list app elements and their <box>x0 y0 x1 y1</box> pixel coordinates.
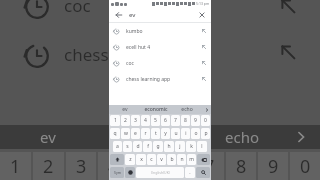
button[interactable]: 6 <box>161 115 170 126</box>
staticText: echo <box>225 127 260 147</box>
button[interactable]: Shift <box>110 154 124 165</box>
staticText: h <box>167 143 171 150</box>
staticText: b <box>170 156 174 163</box>
button[interactable]: d <box>133 141 142 152</box>
staticText: chess le <box>64 43 127 66</box>
button[interactable]: o <box>191 128 200 139</box>
button[interactable]: t <box>151 128 160 139</box>
button[interactable]: r <box>141 128 150 139</box>
staticText: ev <box>40 127 56 147</box>
button[interactable]: l <box>197 141 207 152</box>
staticText: economic <box>144 106 168 113</box>
button[interactable]: 1 <box>110 115 120 126</box>
staticText: 3 <box>76 154 87 179</box>
staticText: 1 <box>114 117 117 124</box>
staticText: f <box>147 143 149 150</box>
button[interactable]: 7 <box>171 115 180 126</box>
button[interactable]: 5 <box>151 115 160 126</box>
staticText: q <box>113 130 117 137</box>
button[interactable]: j <box>175 141 185 152</box>
button[interactable]: Sym <box>110 167 124 178</box>
staticText: e <box>134 130 137 137</box>
other: Insert kumbo <box>201 28 207 34</box>
staticText: 5 <box>140 154 151 179</box>
staticText: 4 <box>144 117 147 124</box>
button[interactable]: h <box>164 141 174 152</box>
staticText: ecell hut 4 <box>126 44 201 51</box>
staticText: echo <box>181 106 193 113</box>
button[interactable]: k <box>186 141 196 152</box>
staticText: g <box>156 143 160 150</box>
staticText: 1 <box>10 154 21 179</box>
staticText: 3 <box>134 117 137 124</box>
button[interactable]: 0 <box>201 115 210 126</box>
button[interactable]: Back <box>113 9 124 20</box>
button[interactable]: Space <box>136 167 184 178</box>
button[interactable]: m <box>187 154 196 165</box>
staticText: English(UK) <box>151 170 170 175</box>
button[interactable]: chess learning app <box>109 71 211 87</box>
button[interactable]: g <box>153 141 163 152</box>
staticText: j <box>179 143 181 150</box>
staticText: 4 <box>108 154 119 179</box>
button[interactable]: u <box>171 128 180 139</box>
button[interactable]: . <box>185 167 195 178</box>
button[interactable]: 8 <box>181 115 190 126</box>
staticText: coc <box>126 60 201 67</box>
staticText: m <box>189 156 194 163</box>
staticText: 5:13 pm <box>196 1 210 6</box>
staticText: 5 <box>154 117 157 124</box>
button[interactable]: w <box>121 128 130 139</box>
button[interactable]: ecell hut 4 <box>109 39 211 55</box>
staticText: 7 <box>204 154 215 179</box>
button[interactable]: a <box>113 141 122 152</box>
button[interactable]: s <box>123 141 132 152</box>
button[interactable]: More suggestions <box>202 105 211 114</box>
staticText: p <box>204 130 208 137</box>
staticText: d <box>136 143 140 150</box>
button[interactable]: b <box>167 154 176 165</box>
staticText: chess learning app <box>126 76 201 83</box>
button[interactable]: n <box>177 154 186 165</box>
button[interactable]: Change language <box>125 167 135 178</box>
staticText: v <box>160 156 163 163</box>
button[interactable]: 2 <box>121 115 130 126</box>
staticText: i <box>185 130 187 137</box>
staticText: 2 <box>124 117 127 124</box>
button[interactable]: economic <box>140 105 171 114</box>
staticText: x <box>140 156 143 163</box>
button[interactable]: 3 <box>131 115 140 126</box>
button[interactable]: coc <box>109 55 211 71</box>
button[interactable]: ev <box>129 7 196 22</box>
button[interactable]: f <box>143 141 152 152</box>
staticText: c <box>150 156 153 163</box>
button[interactable]: 9 <box>191 115 200 126</box>
other: Insert chess learning app <box>201 76 207 82</box>
staticText: 9 <box>268 154 279 179</box>
button[interactable]: Backspace <box>197 154 210 165</box>
staticText: z <box>129 156 132 163</box>
button[interactable]: x <box>136 154 146 165</box>
staticText: 6 <box>172 154 183 179</box>
button[interactable]: echo <box>171 105 202 114</box>
button[interactable]: Search <box>196 167 210 178</box>
button[interactable]: z <box>125 154 135 165</box>
button[interactable]: q <box>110 128 120 139</box>
staticText: k <box>190 143 193 150</box>
staticText: 9 <box>194 117 197 124</box>
button[interactable]: e <box>131 128 140 139</box>
staticText: t <box>155 130 157 137</box>
staticText: s <box>126 143 129 150</box>
staticText: r <box>144 130 147 137</box>
button[interactable]: v <box>157 154 166 165</box>
button[interactable]: p <box>201 128 210 139</box>
button[interactable]: 4 <box>141 115 150 126</box>
button[interactable]: ev <box>109 105 140 114</box>
button[interactable]: Clear <box>196 9 207 20</box>
button[interactable]: y <box>161 128 170 139</box>
staticText: u <box>174 130 178 137</box>
button[interactable]: c <box>147 154 156 165</box>
button[interactable]: i <box>181 128 190 139</box>
staticText: l <box>201 143 203 150</box>
button[interactable]: kumbo <box>109 23 211 39</box>
